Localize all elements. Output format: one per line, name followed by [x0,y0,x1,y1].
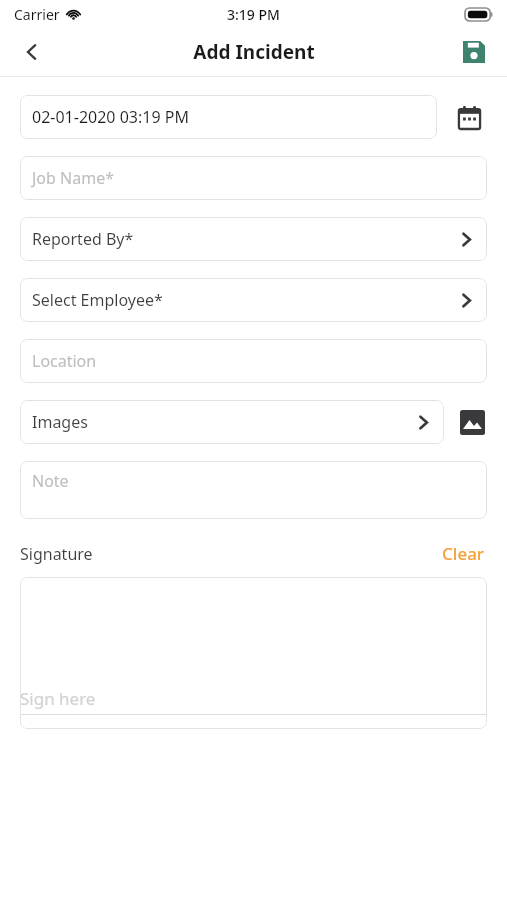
button[interactable]: Reported By* [20,217,487,261]
staticText: Clear [442,542,485,565]
staticText: Select Employee* [32,289,458,311]
button[interactable]: Images [20,400,444,444]
button[interactable]: Note [20,461,487,519]
staticText: 02-01-2020 03:19 PM [32,106,189,128]
staticText: Job Name* [32,167,114,189]
button[interactable]: Location [20,339,487,383]
button[interactable]: Add image [457,407,487,437]
staticText: Location [32,350,97,372]
staticText: Carrier [14,5,60,24]
staticText: Images [32,411,415,433]
staticText: Sign here [20,687,96,710]
button[interactable]: Back [10,30,54,74]
button[interactable]: Job Name* [20,156,487,200]
button[interactable]: Clear [440,540,487,567]
staticText: Reported By* [32,228,458,250]
staticText: Signature [20,543,93,565]
button[interactable]: Pick date [451,99,487,135]
staticText: Add Incident [193,39,315,65]
button[interactable]: 02-01-2020 03:19 PM [20,95,437,139]
button[interactable]: Signature pad [20,577,487,729]
button[interactable]: Select Employee* [20,278,487,322]
staticText: Note [32,470,69,492]
button[interactable]: Save [453,31,495,73]
staticText: 3:19 PM [227,5,280,24]
